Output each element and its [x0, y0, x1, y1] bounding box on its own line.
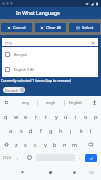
button[interactable]: d — [26, 123, 36, 137]
button[interactable]: u — [61, 109, 71, 123]
button[interactable]: c — [30, 137, 40, 151]
button[interactable]: Select — [69, 23, 100, 32]
button[interactable]: v — [40, 137, 50, 151]
staticText: i — [75, 113, 77, 120]
button[interactable]: Recents — [69, 164, 80, 180]
staticText: l — [90, 127, 92, 134]
button[interactable]: Backspace — [80, 137, 101, 151]
button[interactable]: j — [66, 123, 76, 137]
staticText: Deutsch — [5, 88, 19, 93]
staticText: u — [64, 113, 68, 120]
staticText: ?123 — [3, 155, 11, 160]
button[interactable]: q — [0, 109, 11, 123]
button[interactable]: ?123 — [0, 151, 13, 164]
button[interactable]: l — [86, 123, 96, 137]
button[interactable]: Bengali — [2, 47, 98, 62]
button[interactable]: b — [50, 137, 60, 151]
staticText: x — [24, 141, 27, 148]
staticText: Clear All — [46, 25, 62, 30]
staticText: g — [49, 127, 53, 134]
staticText: o — [84, 113, 88, 120]
staticText: d — [29, 127, 33, 134]
staticText: h — [59, 127, 63, 134]
staticText: c — [34, 141, 37, 148]
button[interactable]: z — [12, 137, 21, 151]
staticText: e — [24, 113, 28, 120]
button[interactable]: Home — [45, 164, 56, 180]
button[interactable]: x — [21, 137, 30, 151]
other: Clear search — [91, 41, 95, 45]
staticText: q — [4, 113, 8, 120]
staticText: s — [20, 127, 23, 134]
staticText: n — [63, 141, 67, 148]
staticText: English (UK) — [14, 67, 35, 72]
button[interactable]: a — [5, 123, 16, 137]
button[interactable]: English — [63, 96, 88, 109]
button[interactable]: h — [56, 123, 66, 137]
button[interactable]: Clear All — [35, 23, 66, 32]
button[interactable]: Deutsch — [5, 87, 24, 93]
staticText: k — [80, 127, 83, 134]
staticText: y — [55, 113, 58, 120]
staticText: engli — [46, 100, 55, 105]
staticText: b — [53, 141, 57, 148]
button[interactable]: Switch keyboard — [86, 164, 97, 180]
button[interactable]: . — [75, 151, 85, 164]
staticText: a — [9, 127, 13, 134]
staticText: t — [45, 113, 47, 120]
button[interactable]: f — [36, 123, 46, 137]
staticText: Cancel — [13, 25, 26, 30]
button[interactable]: p — [91, 109, 101, 123]
staticText: . — [79, 154, 81, 161]
button[interactable]: i — [71, 109, 81, 123]
button[interactable]: o — [81, 109, 91, 123]
staticText: Bengali — [14, 52, 27, 57]
staticText: w — [14, 113, 19, 120]
staticText: m — [72, 141, 78, 148]
button[interactable]: m — [70, 137, 80, 151]
button[interactable]: t — [41, 109, 51, 123]
button[interactable]: k — [76, 123, 86, 137]
button[interactable]: Cancel — [1, 23, 32, 32]
button[interactable]: s — [16, 123, 26, 137]
button[interactable]: eng — [2, 38, 98, 47]
button[interactable]: Voice input — [88, 96, 101, 109]
button[interactable]: , — [13, 151, 23, 164]
button[interactable]: r — [31, 109, 41, 123]
button[interactable]: g — [46, 123, 56, 137]
staticText: eng — [5, 40, 12, 45]
staticText: r — [35, 113, 38, 120]
staticText: j — [70, 127, 72, 134]
staticText: Select — [82, 25, 94, 30]
button[interactable]: w — [11, 109, 21, 123]
button[interactable]: y — [51, 109, 61, 123]
staticText: In What Language — [16, 10, 60, 17]
button[interactable]: Keyboard settings — [0, 96, 13, 109]
button[interactable]: Enter — [85, 154, 97, 162]
staticText: English — [69, 100, 82, 105]
button[interactable]: e — [21, 109, 31, 123]
button[interactable]: English (UK) — [2, 62, 98, 77]
staticText: v — [44, 141, 47, 148]
staticText: Currently selected 1 items (tap to remov… — [1, 78, 72, 83]
staticText: eng — [22, 100, 29, 105]
button[interactable]: engli — [38, 96, 63, 109]
staticText: , — [17, 154, 19, 161]
button[interactable]: Shift — [0, 137, 12, 151]
button[interactable]: Emoji — [23, 151, 36, 164]
button[interactable]: eng — [13, 96, 38, 109]
button[interactable]: Back — [17, 164, 28, 180]
staticText: p — [94, 113, 98, 120]
staticText: f — [40, 127, 42, 134]
button[interactable]: n — [60, 137, 70, 151]
staticText: z — [15, 141, 18, 148]
